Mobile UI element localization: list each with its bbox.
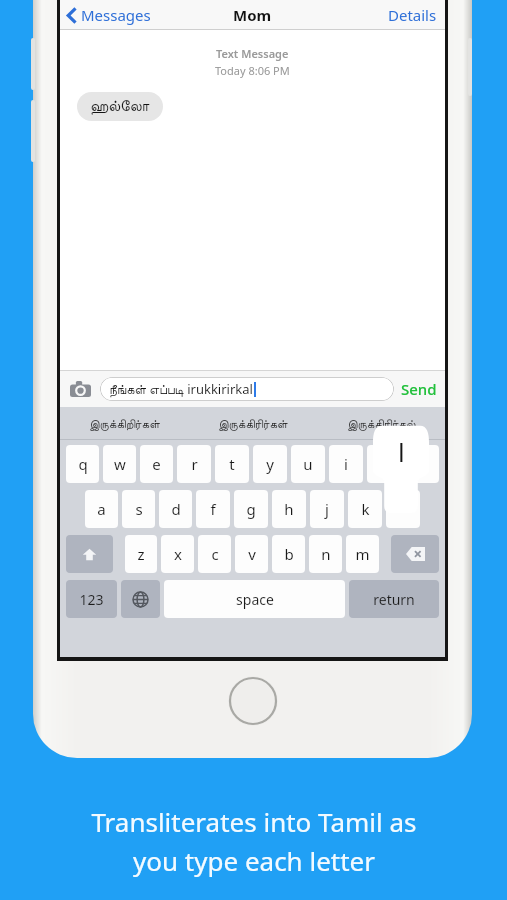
staticText: d — [171, 499, 181, 519]
staticText: r — [191, 454, 198, 474]
button[interactable]: t — [215, 445, 249, 483]
button[interactable]: x — [161, 535, 194, 573]
staticText: w — [114, 454, 126, 474]
staticText: Messages — [81, 5, 151, 25]
staticText: s — [135, 499, 143, 519]
staticText: இருக்கிரிர்கள் — [218, 418, 288, 430]
staticText: g — [246, 499, 256, 519]
button[interactable]: c — [198, 535, 231, 573]
button[interactable]: r — [177, 445, 211, 483]
staticText: ஹல்லோ — [90, 99, 150, 114]
button[interactable]: j — [310, 490, 344, 528]
staticText: j — [325, 499, 329, 519]
staticText: t — [229, 454, 235, 474]
staticText: Details — [388, 5, 437, 25]
staticText: c — [211, 544, 219, 564]
staticText: l — [398, 434, 405, 469]
button[interactable]: i — [329, 445, 363, 483]
staticText: 123 — [79, 590, 104, 609]
button[interactable]: v — [235, 535, 268, 573]
button[interactable]: d — [159, 490, 192, 528]
button[interactable]: u — [291, 445, 325, 483]
staticText: Today 8:06 PM — [215, 63, 290, 78]
staticText: x — [174, 544, 182, 564]
button[interactable]: a — [85, 490, 118, 528]
button[interactable]: n — [309, 535, 342, 573]
button[interactable]: h — [272, 490, 306, 528]
staticText: y — [266, 454, 274, 474]
button[interactable]: Messages — [67, 5, 151, 25]
staticText: e — [152, 454, 161, 474]
button[interactable]: Home — [228, 676, 278, 726]
button[interactable]: y — [253, 445, 287, 483]
button[interactable]: return — [349, 580, 439, 618]
button[interactable]: o — [367, 445, 401, 483]
staticText: you type each letter — [133, 843, 375, 878]
staticText: Text Message — [216, 46, 289, 61]
staticText: Transliterates into Tamil as — [91, 804, 417, 839]
button[interactable]: w — [103, 445, 136, 483]
staticText: u — [303, 454, 313, 474]
button[interactable]: Switch language — [121, 580, 160, 618]
staticText: n — [321, 544, 331, 564]
staticText: f — [210, 499, 216, 519]
button[interactable]: f — [196, 490, 230, 528]
button[interactable]: இருக்கிரிர்கல் — [317, 407, 445, 440]
button[interactable]: e — [140, 445, 173, 483]
button[interactable]: இருக்கிறிர்கள் — [60, 407, 189, 440]
staticText: இருக்கிரிர்கல் — [347, 418, 416, 430]
staticText: நீங்கள் எப்படி irukkirirkal — [109, 380, 253, 398]
staticText: Send — [401, 379, 437, 399]
button[interactable]: k — [348, 490, 382, 528]
button[interactable]: s — [122, 490, 155, 528]
button[interactable]: q — [66, 445, 99, 483]
button[interactable]: Shift — [66, 535, 113, 573]
button[interactable]: z — [125, 535, 157, 573]
button[interactable]: நீங்கள் எப்படி irukkirirkal — [100, 377, 394, 401]
staticText: v — [248, 544, 256, 564]
button[interactable]: 123 — [66, 580, 117, 618]
button[interactable] — [386, 490, 420, 528]
button[interactable]: இருக்கிரிர்கள் — [189, 407, 317, 440]
staticText: k — [361, 499, 370, 519]
staticText: h — [284, 499, 294, 519]
staticText: a — [97, 499, 106, 519]
staticText: இருக்கிறிர்கள் — [89, 418, 160, 430]
button[interactable]: Camera — [68, 377, 92, 401]
staticText: m — [355, 544, 370, 564]
staticText: return — [373, 590, 415, 609]
staticText: q — [78, 454, 88, 474]
button[interactable]: Backspace — [391, 535, 439, 573]
staticText: Mom — [233, 5, 272, 25]
staticText: z — [137, 544, 145, 564]
button[interactable]: Details — [388, 5, 437, 25]
button[interactable]: m — [346, 535, 379, 573]
button[interactable]: g — [234, 490, 268, 528]
button[interactable]: b — [272, 535, 305, 573]
staticText: i — [344, 454, 348, 474]
button[interactable]: space — [164, 580, 345, 618]
button[interactable]: Send — [401, 379, 437, 399]
staticText: b — [284, 544, 294, 564]
staticText: space — [236, 590, 274, 609]
